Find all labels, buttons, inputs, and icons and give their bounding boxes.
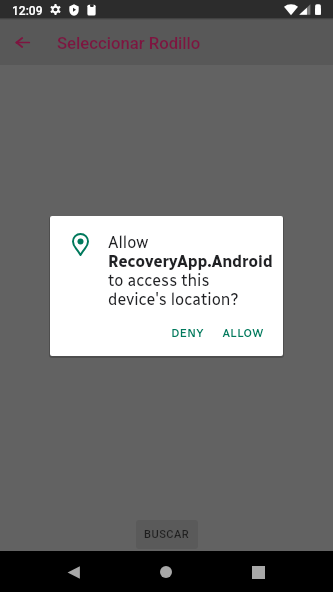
button[interactable]: Home (146, 552, 186, 592)
button[interactable]: DENY (166, 320, 208, 346)
staticText: to access this (108, 271, 210, 290)
staticText: Allow (108, 233, 149, 252)
button[interactable]: Back (54, 552, 94, 592)
staticText: ALLOW (222, 326, 264, 340)
button[interactable]: Back (8, 28, 37, 57)
staticText: 12:09 (12, 4, 43, 18)
staticText: DENY (171, 326, 204, 340)
button[interactable]: BUSCAR (136, 520, 198, 549)
staticText: device's location? (108, 290, 239, 309)
staticText: RecoveryApp.Android (108, 252, 273, 271)
staticText: Seleccionar Rodillo (57, 34, 201, 54)
staticText: BUSCAR (144, 528, 190, 541)
button[interactable]: ALLOW (218, 320, 268, 346)
button[interactable]: Recents (238, 552, 278, 592)
